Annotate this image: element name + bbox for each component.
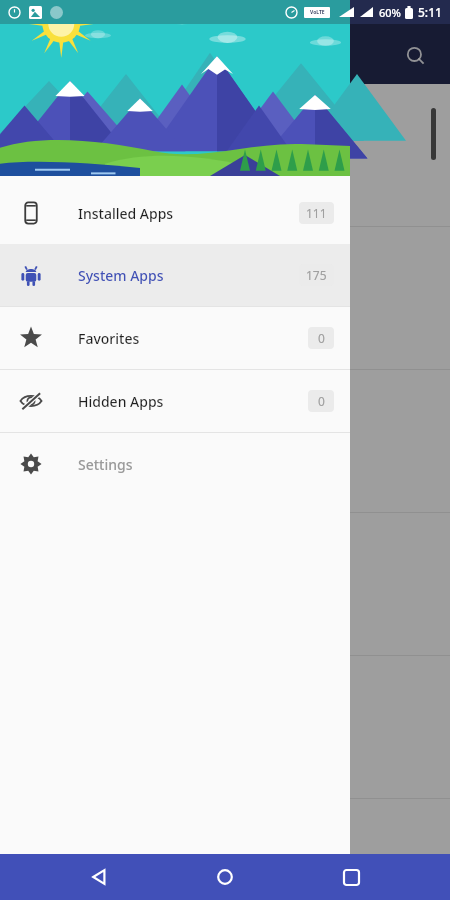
staticText: 0	[318, 330, 325, 346]
staticText: Settings	[78, 455, 133, 474]
button[interactable]	[0, 370, 450, 512]
staticText: 111	[306, 205, 327, 221]
staticText: 0	[318, 393, 325, 409]
staticText: VoLTE	[310, 9, 325, 16]
button[interactable]: Home	[198, 854, 252, 900]
button[interactable]	[0, 513, 450, 655]
button[interactable]	[0, 0, 350, 176]
button[interactable]: Installed Apps	[0, 182, 350, 244]
button[interactable]	[0, 84, 450, 226]
button[interactable]: Search	[396, 36, 436, 76]
staticText: Favorites	[78, 329, 140, 348]
button[interactable]	[0, 227, 450, 369]
staticText: 5:11	[418, 4, 442, 20]
staticText: 175	[306, 267, 327, 283]
staticText: Installed Apps	[78, 204, 174, 223]
button[interactable]: Favorites	[0, 307, 350, 369]
button[interactable]: Hidden Apps	[0, 370, 350, 432]
staticText: System Apps	[78, 266, 164, 285]
button[interactable]: Recents	[324, 854, 378, 900]
button[interactable]: System Apps	[0, 244, 350, 306]
button[interactable]: Settings	[0, 433, 350, 495]
staticText: Hidden Apps	[78, 392, 164, 411]
button[interactable]	[0, 656, 450, 798]
staticText: 60%	[379, 5, 401, 20]
button[interactable]: Back	[72, 854, 126, 900]
